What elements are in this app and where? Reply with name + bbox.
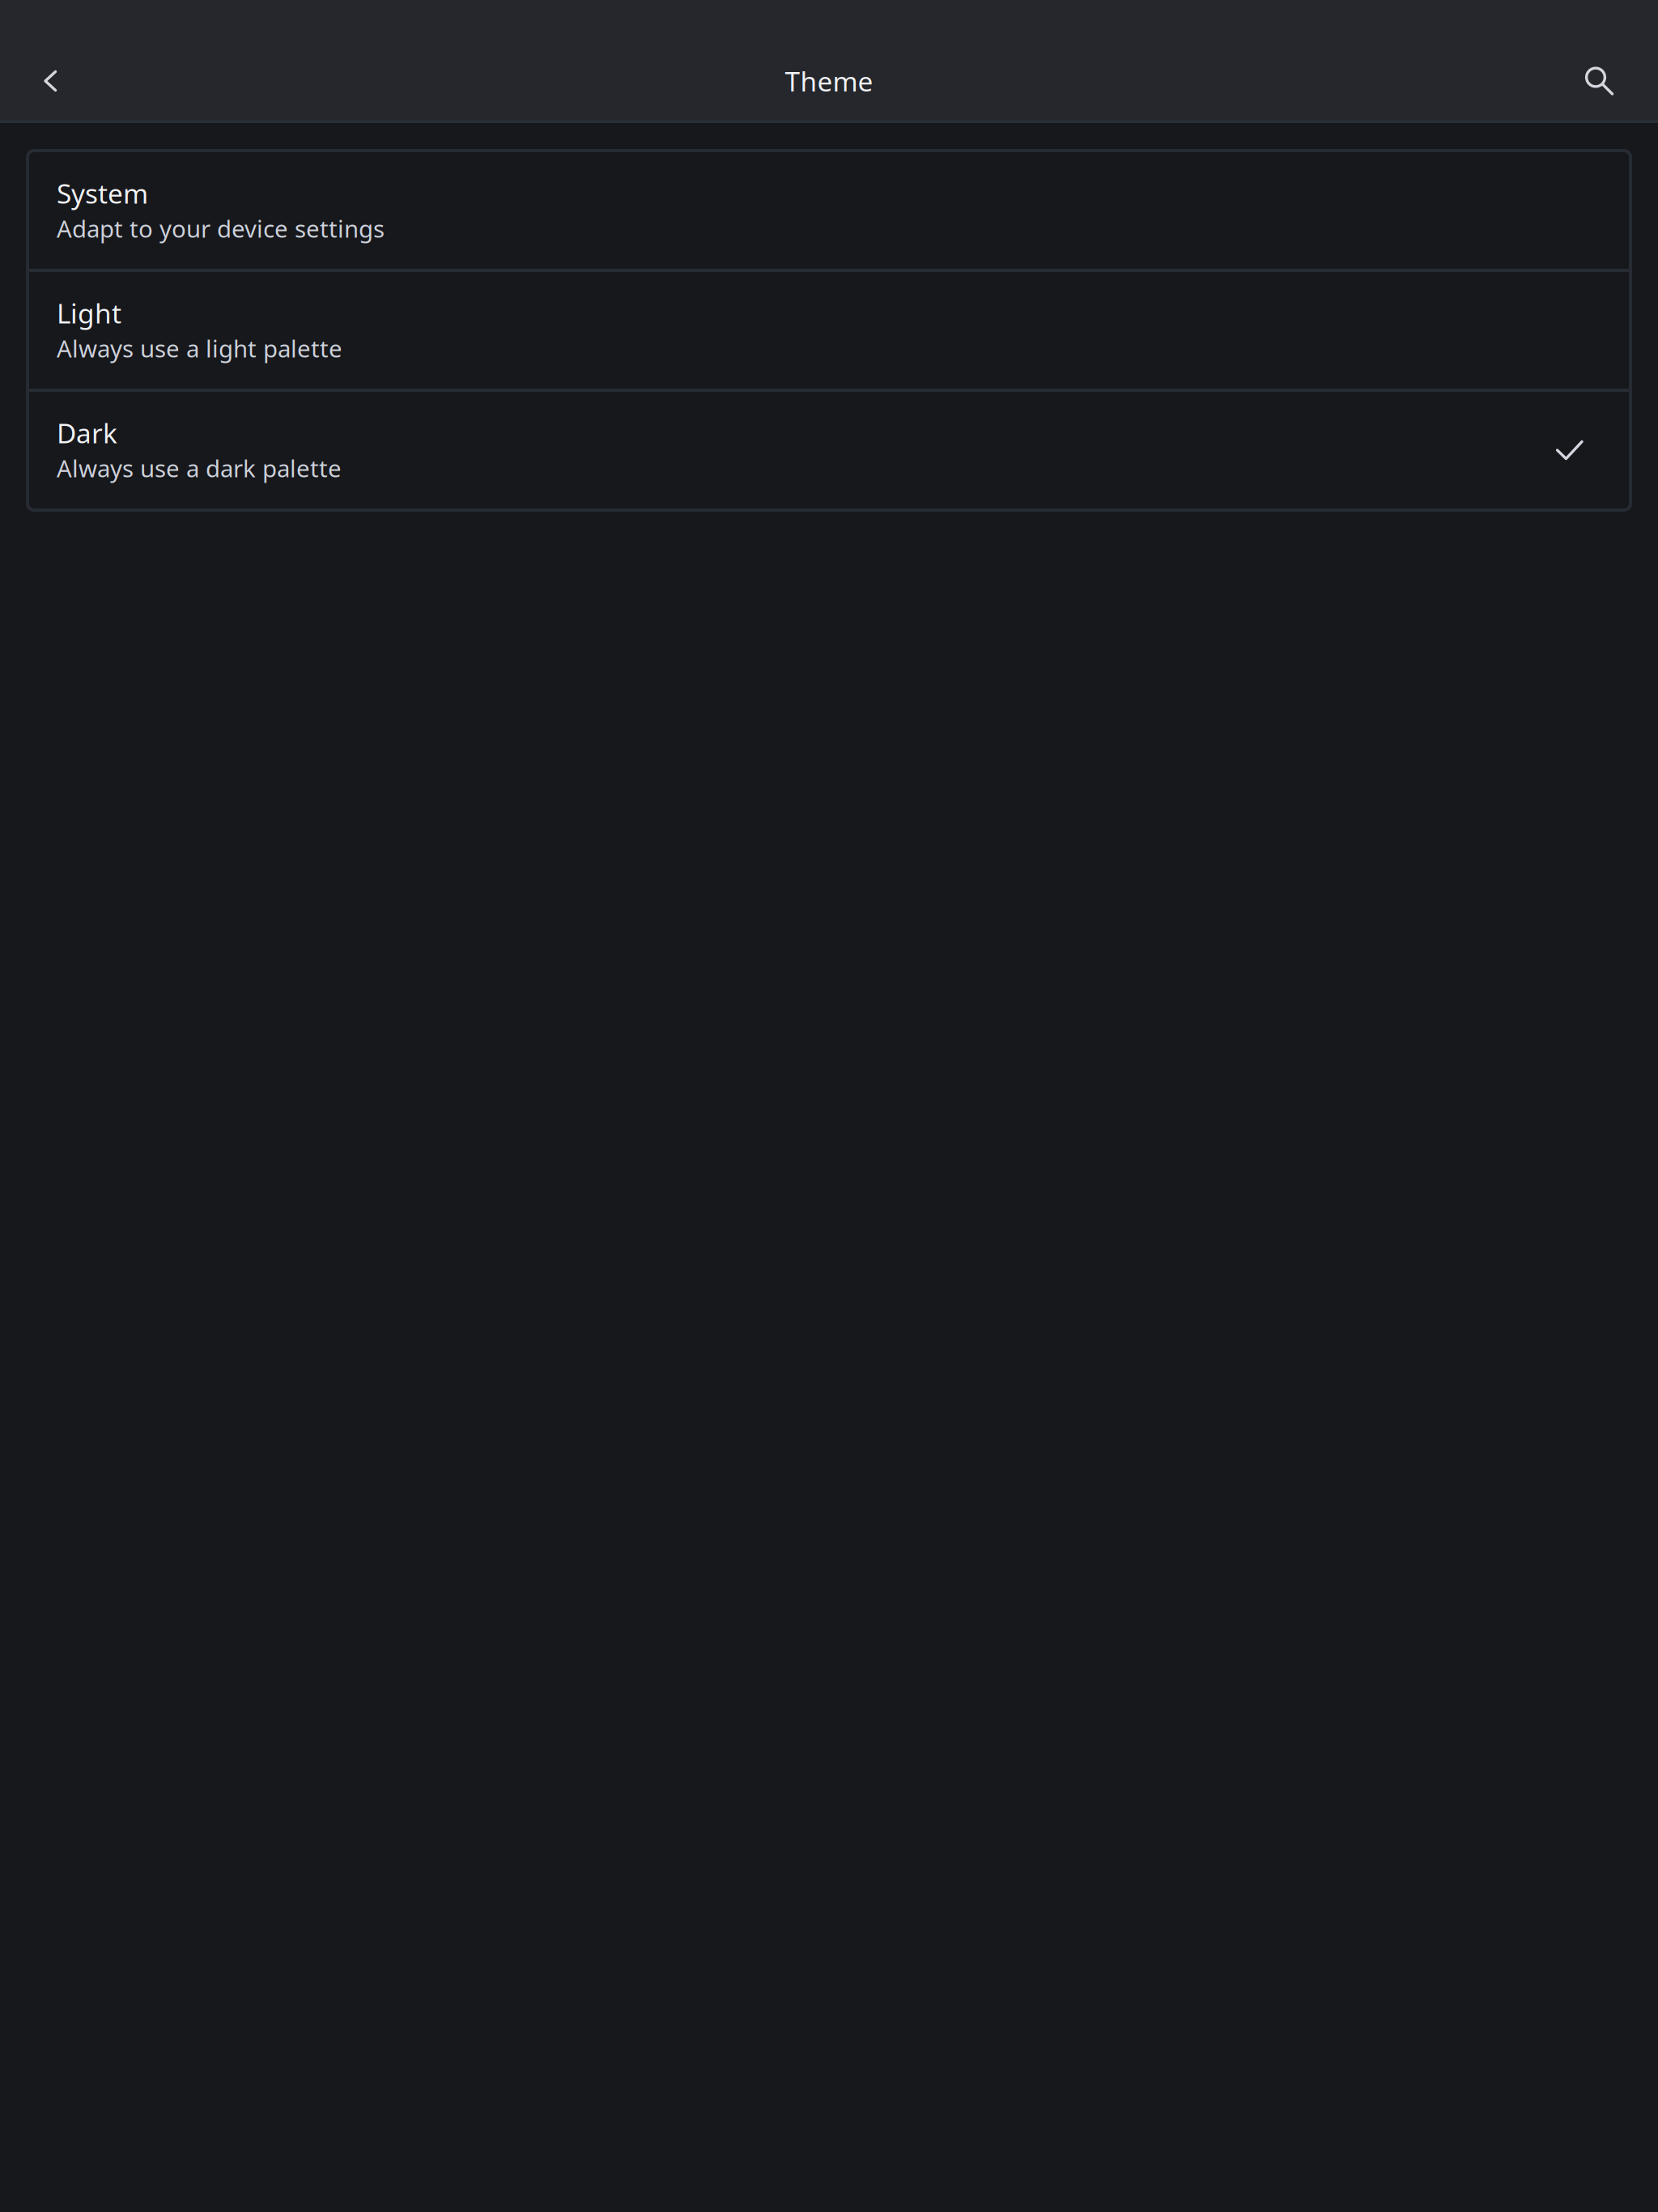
staticText: Dark — [57, 415, 117, 451]
button[interactable]: System — [28, 151, 1630, 270]
button[interactable]: Search — [1541, 42, 1658, 120]
staticText: System — [57, 175, 148, 211]
button[interactable]: Dark — [28, 390, 1630, 510]
staticText: Always use a light palette — [57, 333, 342, 364]
button[interactable]: Back — [0, 42, 101, 120]
staticText: Light — [57, 295, 121, 331]
staticText: Adapt to your device settings — [57, 213, 385, 244]
button[interactable]: Light — [28, 270, 1630, 390]
staticText: Always use a dark palette — [57, 452, 342, 484]
staticText: Theme — [785, 63, 873, 99]
